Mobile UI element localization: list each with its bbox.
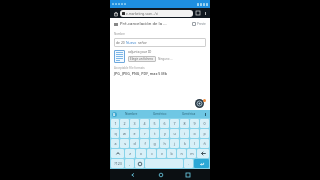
- button[interactable]: n: [177, 149, 186, 158]
- staticText: m: [190, 151, 194, 156]
- staticText: z: [129, 151, 131, 156]
- staticText: Previe: [197, 22, 206, 26]
- staticText: s: [124, 141, 126, 146]
- button[interactable]: Space: [145, 159, 183, 168]
- staticText: e-marketing.scan…/ci: [126, 12, 159, 16]
- staticText: n: [180, 151, 183, 156]
- button[interactable]: a: [111, 139, 119, 148]
- button[interactable]: w: [120, 129, 129, 138]
- button[interactable]: g: [150, 139, 159, 148]
- button[interactable]: 7: [170, 119, 179, 128]
- button[interactable]: Genérico: [145, 110, 174, 118]
- button[interactable]: l: [190, 139, 199, 148]
- button[interactable]: e-marketing.scan…/ci: [120, 10, 193, 17]
- staticText: x: [140, 151, 142, 156]
- staticText: ñ: [203, 141, 206, 146]
- staticText: JPG, JPEG, PNG, PDF, max 5 Mb: [114, 71, 167, 76]
- staticText: v: [161, 151, 163, 156]
- button[interactable]: Enter: [194, 159, 209, 168]
- button[interactable]: ,: [125, 159, 134, 168]
- staticText: i: [184, 131, 185, 136]
- staticText: l: [194, 141, 195, 146]
- staticText: h: [163, 141, 166, 146]
- button[interactable]: 5: [150, 119, 159, 128]
- staticText: q: [114, 131, 117, 136]
- button[interactable]: z: [125, 149, 135, 158]
- button[interactable]: .: [184, 159, 193, 168]
- button[interactable]: ?123: [111, 159, 124, 168]
- button[interactable]: 1: [111, 119, 119, 128]
- button[interactable]: e: [130, 129, 139, 138]
- button[interactable]: v: [157, 149, 166, 158]
- staticText: y: [164, 131, 166, 136]
- staticText: 4: [143, 121, 146, 126]
- staticText: ?123: [114, 161, 122, 166]
- staticText: 2: [123, 121, 126, 126]
- button[interactable]: 0: [200, 119, 209, 128]
- staticText: k: [184, 141, 186, 146]
- button[interactable]: Tabs: [195, 10, 201, 16]
- staticText: 8: [183, 121, 186, 126]
- button[interactable]: r: [140, 129, 149, 138]
- staticText: señor: [137, 40, 147, 45]
- button[interactable]: de 20: [114, 38, 206, 47]
- button[interactable]: h: [160, 139, 169, 148]
- button[interactable]: i: [180, 129, 189, 138]
- staticText: adjunta your ID: [128, 50, 152, 54]
- button[interactable]: 9: [190, 119, 199, 128]
- button[interactable]: y: [160, 129, 169, 138]
- button[interactable]: Home: [156, 170, 165, 179]
- staticText: c: [151, 151, 153, 156]
- staticText: de 20: [116, 40, 126, 45]
- button[interactable]: s: [120, 139, 129, 148]
- button[interactable]: Elegir un fichero: [128, 56, 156, 62]
- button[interactable]: Settings: [203, 112, 208, 117]
- staticText: b: [170, 151, 173, 156]
- staticText: Nuevo: [126, 40, 137, 45]
- button[interactable]: More options: [202, 10, 208, 16]
- staticText: 9: [193, 121, 196, 126]
- button[interactable]: Previe: [191, 21, 207, 27]
- button[interactable]: Backspace: [197, 149, 209, 158]
- button[interactable]: Shift: [111, 149, 124, 158]
- button[interactable]: u: [170, 129, 179, 138]
- button[interactable]: q: [111, 129, 119, 138]
- staticText: u: [173, 131, 176, 136]
- button[interactable]: x: [136, 149, 146, 158]
- button[interactable]: 2: [120, 119, 129, 128]
- button[interactable]: c: [147, 149, 156, 158]
- button[interactable]: Home: [112, 10, 119, 17]
- staticText: w: [123, 131, 126, 136]
- button[interactable]: Nombre: [117, 110, 145, 118]
- button[interactable]: Menu: [113, 22, 118, 27]
- button[interactable]: Record: [195, 99, 204, 108]
- button[interactable]: d: [130, 139, 139, 148]
- button[interactable]: ñ: [200, 139, 209, 148]
- button[interactable]: Voice input: [112, 112, 117, 117]
- button[interactable]: m: [187, 149, 196, 158]
- button[interactable]: Recents: [183, 170, 192, 179]
- button[interactable]: f: [140, 139, 149, 148]
- staticText: Nombre: [125, 112, 138, 116]
- button[interactable]: Genérica: [174, 110, 203, 118]
- button[interactable]: b: [167, 149, 176, 158]
- button[interactable]: Back: [128, 170, 137, 179]
- staticText: 6: [163, 121, 166, 126]
- button[interactable]: o: [190, 129, 199, 138]
- staticText: ,: [129, 161, 130, 166]
- button[interactable]: p: [200, 129, 209, 138]
- staticText: f: [144, 141, 146, 146]
- button[interactable]: t: [150, 129, 159, 138]
- staticText: j: [174, 141, 175, 146]
- button[interactable]: 8: [180, 119, 189, 128]
- staticText: 7: [173, 121, 176, 126]
- button[interactable]: Emoji: [135, 159, 144, 168]
- button[interactable]: 6: [160, 119, 169, 128]
- button[interactable]: j: [170, 139, 179, 148]
- button[interactable]: 3: [130, 119, 139, 128]
- button[interactable]: 4: [140, 119, 149, 128]
- staticText: 3: [133, 121, 136, 126]
- staticText: t: [154, 131, 156, 136]
- button[interactable]: k: [180, 139, 189, 148]
- staticText: d: [133, 141, 136, 146]
